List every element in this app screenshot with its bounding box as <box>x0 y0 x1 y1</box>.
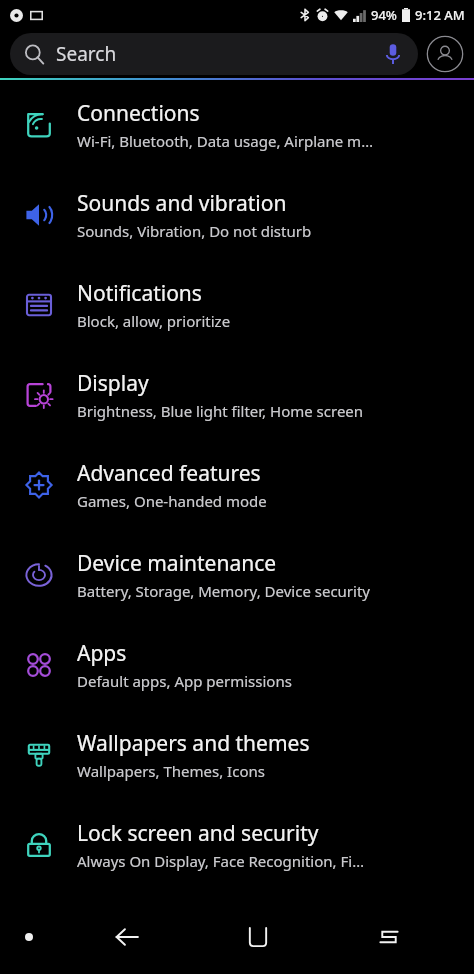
staticText: Lock screen and security <box>77 819 319 848</box>
button[interactable]: Connections <box>0 80 474 170</box>
button[interactable]: Apps <box>0 620 474 710</box>
button[interactable]: Advanced features <box>0 440 474 530</box>
staticText: Sounds and vibration <box>77 189 287 218</box>
other: Voice search <box>382 43 404 65</box>
staticText: Block, allow, prioritize <box>77 311 231 331</box>
button[interactable]: Recents <box>323 900 454 974</box>
staticText: Sounds, Vibration, Do not disturb <box>77 221 312 241</box>
staticText: Apps <box>77 639 127 668</box>
staticText: 94% <box>371 6 397 24</box>
button[interactable]: Wallpapers and themes <box>0 710 474 800</box>
staticText: Battery, Storage, Memory, Device securit… <box>77 581 370 601</box>
staticText: Wi-Fi, Bluetooth, Data usage, Airplane m… <box>77 131 373 151</box>
staticText: Brightness, Blue light filter, Home scre… <box>77 401 364 421</box>
button[interactable]: Back <box>62 900 192 974</box>
button[interactable]: Sounds and vibration <box>0 170 474 260</box>
staticText: Display <box>77 369 149 398</box>
staticText: Games, One-handed mode <box>77 491 267 511</box>
staticText: Notifications <box>77 279 202 308</box>
staticText: Advanced features <box>77 459 261 488</box>
staticText: Search <box>56 41 117 67</box>
staticText: Default apps, App permissions <box>77 671 292 691</box>
button[interactable]: Lock screen and security <box>0 800 474 890</box>
staticText: Device maintenance <box>77 549 277 578</box>
button[interactable]: Display <box>0 350 474 440</box>
button[interactable]: Notifications <box>0 260 474 350</box>
button[interactable]: Home <box>192 900 323 974</box>
staticText: 9:12 AM <box>415 6 465 24</box>
button[interactable]: Device maintenance <box>0 530 474 620</box>
button[interactable]: Search <box>10 33 418 75</box>
staticText: Always On Display, Face Recognition, Fi… <box>77 851 365 871</box>
button[interactable]: Account <box>426 35 464 73</box>
staticText: Wallpapers, Themes, Icons <box>77 761 265 781</box>
staticText: Connections <box>77 99 200 128</box>
staticText: Wallpapers and themes <box>77 729 310 758</box>
